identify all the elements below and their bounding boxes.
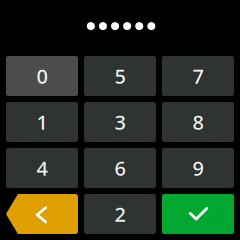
staticText: 5 — [114, 63, 125, 89]
staticText: 6 — [114, 155, 125, 181]
staticText: 2 — [114, 201, 125, 227]
button[interactable]: 4 — [6, 148, 78, 188]
button[interactable]: 6 — [84, 148, 156, 188]
staticText: 0 — [36, 63, 47, 89]
staticText: 9 — [192, 155, 203, 181]
button[interactable]: 2 — [84, 194, 156, 234]
staticText: 1 — [36, 109, 47, 135]
button[interactable]: 9 — [162, 148, 234, 188]
button[interactable]: Confirm — [162, 194, 234, 234]
staticText: 4 — [36, 155, 47, 181]
button[interactable]: 5 — [84, 56, 156, 96]
button[interactable]: 8 — [162, 102, 234, 142]
button[interactable]: 3 — [84, 102, 156, 142]
button[interactable]: 7 — [162, 56, 234, 96]
button[interactable]: Delete — [6, 194, 78, 234]
button[interactable]: 1 — [6, 102, 78, 142]
staticText: 8 — [192, 109, 203, 135]
button[interactable]: 0 — [6, 56, 78, 96]
staticText: 7 — [192, 63, 203, 89]
staticText: 3 — [114, 109, 125, 135]
